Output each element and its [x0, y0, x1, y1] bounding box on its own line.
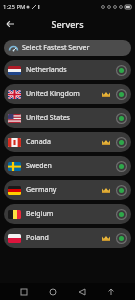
staticText: Belgium [26, 209, 54, 219]
staticText: Netherlands [26, 65, 67, 75]
button[interactable]: Germany [4, 180, 131, 200]
button[interactable]: United Kingdom [4, 84, 131, 104]
button[interactable]: United States [4, 108, 131, 128]
button[interactable]: Sweden [4, 156, 131, 176]
staticText: 1:25 PM [3, 3, 26, 11]
button[interactable]: Home [46, 285, 60, 299]
button[interactable]: Belgium [4, 204, 131, 224]
button[interactable]: Canada [4, 132, 131, 152]
button[interactable]: Select Fastest Server [4, 40, 131, 56]
button[interactable]: Netherlands [4, 60, 131, 80]
staticText: United Kingdom [26, 89, 80, 99]
staticText: Germany [26, 185, 57, 195]
button[interactable]: Keyboard [104, 285, 118, 299]
button[interactable]: Poland [4, 228, 131, 248]
staticText: Canada [26, 137, 51, 147]
staticText: Servers [51, 18, 84, 30]
button[interactable]: Back [75, 285, 89, 299]
button[interactable]: Back [2, 16, 18, 32]
staticText: Sweden [26, 161, 52, 171]
button[interactable]: Recent apps [17, 285, 31, 299]
staticText: United States [26, 113, 70, 123]
staticText: Poland [26, 233, 49, 243]
staticText: Select Fastest Server [22, 43, 90, 53]
